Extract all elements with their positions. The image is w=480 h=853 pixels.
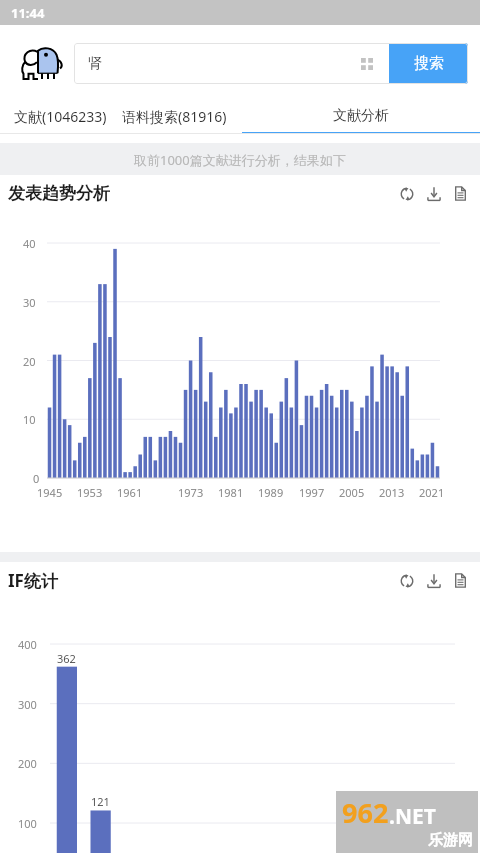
staticText: 文献分析 — [333, 107, 389, 125]
staticText: 1997 — [299, 485, 325, 500]
staticText: 文献(1046233) — [14, 107, 107, 126]
staticText: 乐游网 — [428, 831, 473, 850]
staticText: 100 — [18, 816, 37, 831]
staticText: 1953 — [77, 485, 103, 500]
staticText: 肾 — [88, 55, 102, 73]
staticText: 40 — [23, 236, 36, 251]
button[interactable]: 语料搜索(81916) — [122, 98, 227, 134]
staticText: 0 — [33, 471, 40, 486]
staticText: 1961 — [117, 485, 143, 500]
staticText: 语料搜索(81916) — [122, 107, 227, 126]
staticText: 200 — [18, 756, 37, 771]
button[interactable]: Refresh — [393, 180, 420, 207]
staticText: 取前1000篇文献进行分析，结果如下 — [134, 151, 346, 169]
button[interactable]: Report — [447, 180, 474, 207]
staticText: 2021 — [419, 485, 445, 500]
staticText: 搜索 — [414, 54, 444, 73]
button[interactable]: Download — [420, 180, 447, 207]
button[interactable]: Home logo — [12, 43, 68, 84]
staticText: 1981 — [218, 485, 244, 500]
staticText: 1989 — [258, 485, 284, 500]
staticText: 发表趋势分析 — [8, 183, 110, 204]
staticText: 362 — [57, 651, 76, 666]
staticText: 300 — [18, 697, 37, 712]
staticText: 30 — [23, 295, 36, 310]
button[interactable]: Report — [447, 567, 474, 594]
staticText: 962 — [342, 794, 389, 831]
staticText: IF统计 — [8, 569, 58, 592]
staticText: 2013 — [379, 485, 405, 500]
staticText: 1945 — [37, 485, 63, 500]
staticText: 1973 — [178, 485, 204, 500]
button[interactable]: Refresh — [393, 567, 420, 594]
button[interactable]: Download — [420, 567, 447, 594]
button[interactable]: 文献分析 — [242, 98, 480, 134]
button[interactable]: Advanced search — [361, 58, 373, 70]
button[interactable]: 搜索 — [389, 43, 468, 84]
staticText: 11:44 — [11, 4, 45, 22]
button[interactable]: 文献(1046233) — [14, 98, 107, 134]
staticText: 20 — [23, 354, 36, 369]
staticText: 121 — [91, 794, 110, 809]
staticText: .NET — [389, 802, 436, 831]
staticText: 2005 — [339, 485, 365, 500]
button[interactable]: 肾 — [74, 43, 389, 84]
staticText: 400 — [18, 637, 37, 652]
staticText: 10 — [23, 412, 36, 427]
